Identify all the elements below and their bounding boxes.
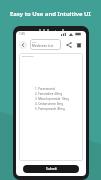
staticText: 3. Metoclopramide 10mg [35, 97, 70, 101]
button[interactable]: Back [19, 41, 27, 49]
staticText: Title [32, 41, 37, 44]
staticText: Easy to Use and Intuitive UI [10, 10, 91, 18]
button[interactable]: Title [30, 39, 61, 50]
staticText: Description [22, 55, 34, 58]
staticText: 5. Pantoprazole 40mg [35, 107, 65, 111]
staticText: 2. Famotidine 40mg [35, 92, 63, 96]
staticText: Medicines List [32, 44, 54, 48]
staticText: Submit [46, 167, 57, 171]
button[interactable]: Description [19, 53, 83, 161]
button[interactable]: Delete [74, 40, 83, 49]
staticText: 1:05 [19, 32, 25, 36]
staticText: 1. Paracetamol [35, 87, 56, 91]
staticText: 4. Ondansetron 8mg [35, 102, 64, 106]
button[interactable]: Submit [23, 165, 79, 173]
button[interactable]: Share [64, 40, 73, 49]
